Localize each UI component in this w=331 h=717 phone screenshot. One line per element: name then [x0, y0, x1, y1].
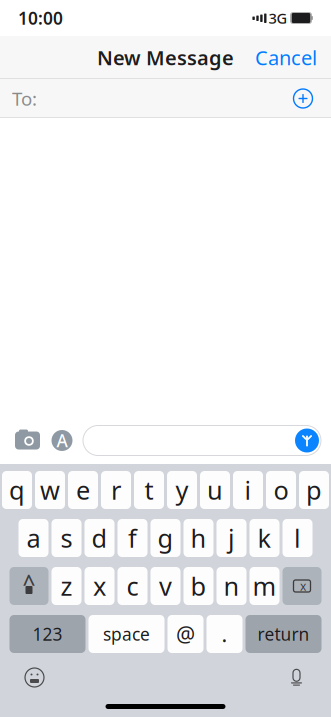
button[interactable]: i	[233, 471, 263, 509]
button[interactable]: g	[150, 519, 180, 557]
staticText: x	[300, 578, 306, 594]
button[interactable]: Apps	[50, 428, 74, 452]
button[interactable]: s	[51, 519, 81, 557]
staticText: k	[257, 521, 271, 555]
button[interactable]: d	[84, 519, 114, 557]
button[interactable]: z	[51, 567, 81, 605]
staticText: i	[244, 473, 251, 507]
staticText: x	[93, 569, 106, 603]
staticText: o	[273, 473, 288, 507]
staticText: t	[144, 473, 153, 507]
button[interactable]: c	[117, 567, 147, 605]
button[interactable]: Dictation	[278, 659, 315, 696]
staticText: 3G	[268, 8, 287, 28]
button[interactable]: l	[282, 519, 312, 557]
staticText: z	[60, 569, 72, 603]
button[interactable]: w	[35, 471, 65, 509]
button[interactable]: e	[68, 471, 98, 509]
staticText: u	[207, 473, 223, 507]
button[interactable]: v	[150, 567, 180, 605]
staticText: A	[56, 429, 67, 452]
button[interactable]: h	[183, 519, 213, 557]
staticText: New Message	[97, 44, 234, 71]
staticText: space	[103, 622, 150, 645]
button[interactable]: a	[18, 519, 48, 557]
staticText: s	[60, 521, 72, 555]
button[interactable]: space	[88, 615, 164, 653]
button[interactable]: y	[167, 471, 197, 509]
staticText: j	[228, 521, 235, 555]
button[interactable]: o	[266, 471, 296, 509]
staticText: b	[190, 569, 206, 603]
staticText: c	[126, 569, 138, 603]
staticText: 123	[32, 622, 62, 645]
button[interactable]: r	[101, 471, 131, 509]
staticText: q	[9, 473, 25, 507]
button[interactable]: Delete	[282, 567, 321, 605]
button[interactable]: t	[134, 471, 164, 509]
staticText: m	[252, 569, 276, 603]
button[interactable]: Add contact	[287, 82, 319, 114]
staticText: f	[128, 521, 137, 555]
staticText: @	[176, 620, 195, 648]
button[interactable]: k	[249, 519, 279, 557]
button[interactable]: Camera	[14, 428, 41, 452]
button[interactable]: Emoji	[16, 659, 53, 696]
button[interactable]: j	[216, 519, 246, 557]
button[interactable]: return	[245, 615, 321, 653]
button[interactable]: 123	[9, 615, 85, 653]
button[interactable]: Shift	[9, 567, 48, 605]
button[interactable]: @	[167, 615, 203, 653]
staticText: p	[306, 473, 322, 507]
button[interactable]: p	[299, 471, 329, 509]
staticText: l	[294, 521, 301, 555]
button[interactable]: n	[216, 567, 246, 605]
staticText: g	[157, 521, 173, 555]
button[interactable]: Cancel	[241, 36, 331, 79]
staticText: return	[257, 622, 309, 645]
staticText: To:	[12, 86, 37, 111]
button[interactable]: u	[200, 471, 230, 509]
staticText: n	[223, 569, 239, 603]
staticText: e	[76, 473, 90, 507]
staticText: v	[159, 569, 172, 603]
button[interactable]: q	[2, 471, 32, 509]
staticText: w	[40, 473, 60, 507]
button[interactable]: m	[249, 567, 279, 605]
staticText: h	[190, 521, 206, 555]
staticText: Cancel	[255, 44, 317, 71]
staticText: d	[91, 521, 107, 555]
button[interactable]: Send	[293, 426, 321, 454]
staticText: r	[111, 473, 121, 507]
staticText: 10:00	[18, 6, 63, 29]
button[interactable]: .	[206, 615, 242, 653]
staticText: .	[221, 620, 227, 648]
button[interactable]: b	[183, 567, 213, 605]
staticText: ^	[22, 568, 35, 598]
staticText: a	[26, 521, 40, 555]
button[interactable]: f	[117, 519, 147, 557]
staticText: y	[175, 473, 188, 507]
button[interactable]: x	[84, 567, 114, 605]
